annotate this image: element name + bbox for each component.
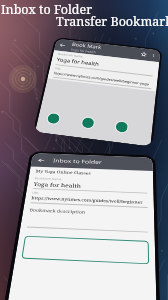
staticText: URL [54, 67, 61, 71]
staticText: Bookmark description [29, 207, 86, 215]
staticText: Transfer Bookmark [56, 13, 168, 30]
button[interactable]: More options [150, 52, 157, 59]
staticText: URL [32, 190, 40, 195]
staticText: Book Mark [71, 41, 102, 51]
staticText: Bookmark Name [58, 52, 84, 58]
button[interactable]: Action [115, 121, 128, 133]
staticText: Inbox to Folder [52, 157, 103, 166]
staticText: https://www.nytimes.com/guides/well/begi… [53, 71, 150, 86]
button[interactable]: Save bookmark [22, 236, 149, 264]
staticText: My Yoga Online Classes [35, 169, 91, 176]
button[interactable]: Back [31, 153, 153, 171]
button[interactable]: Back [54, 39, 161, 62]
staticText: Inbox to Folder [1, 1, 93, 18]
staticText: BookMark Name [34, 176, 62, 181]
staticText: https://www.nytimes.com/guides/well/begi… [31, 195, 143, 205]
staticText: Yoga for health [56, 56, 99, 68]
button[interactable]: Favourite [140, 51, 147, 58]
staticText: Yoga for health [70, 47, 96, 54]
button[interactable]: Action [47, 113, 60, 124]
button[interactable]: Action [81, 117, 95, 129]
other: Back [59, 42, 66, 48]
other: Back [37, 157, 46, 163]
staticText: Yoga for health [33, 181, 81, 189]
